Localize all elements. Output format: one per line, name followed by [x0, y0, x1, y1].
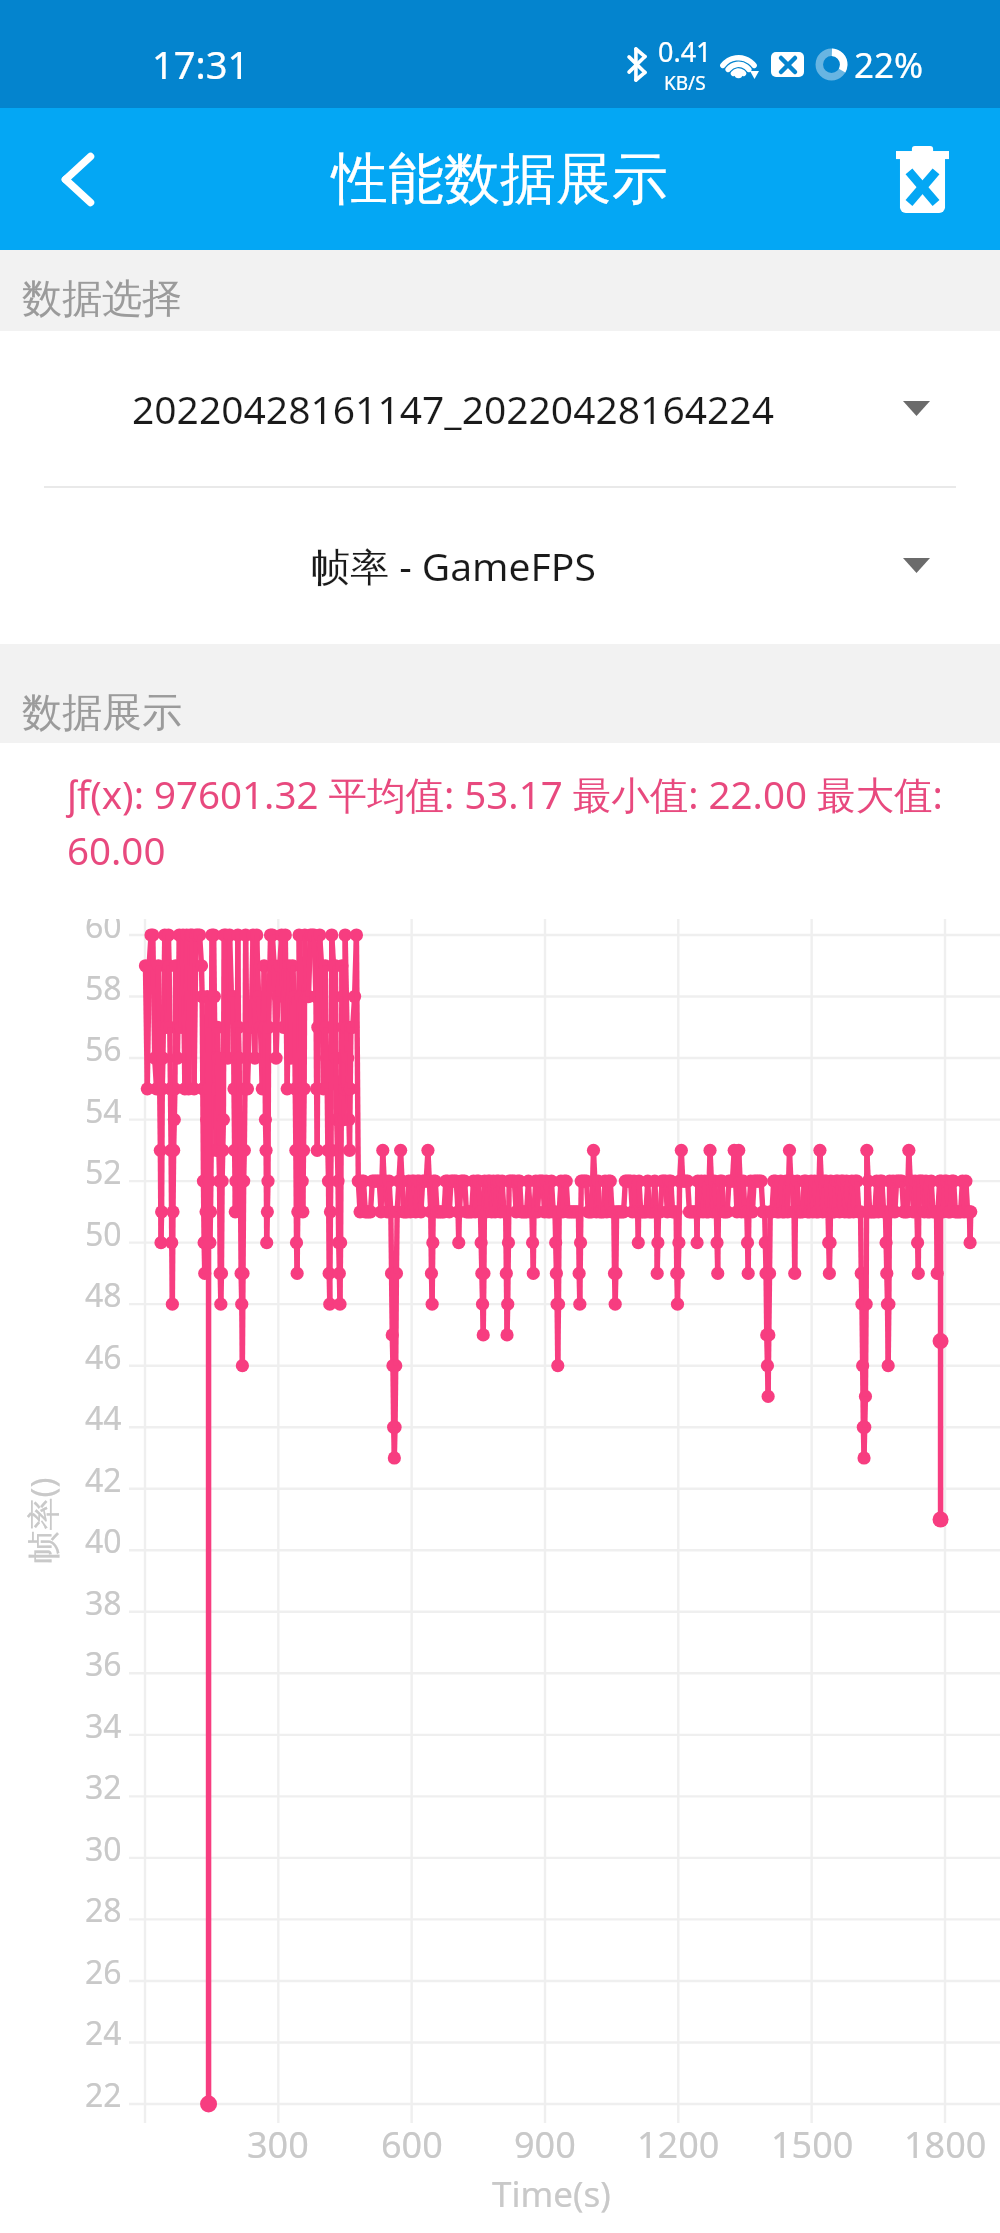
staticText: 56	[85, 1027, 122, 1071]
staticText: 24	[85, 2011, 122, 2055]
staticText: 17:31	[152, 38, 250, 90]
staticText: 40	[85, 1519, 122, 1563]
staticText: 48	[85, 1273, 122, 1317]
staticText: 50	[85, 1212, 122, 1256]
staticText: 26	[85, 1950, 122, 1994]
staticText: 22	[85, 2073, 122, 2117]
staticText: 22%	[854, 41, 924, 89]
staticText: Time(s)	[492, 2170, 611, 2218]
staticText: 32	[85, 1765, 122, 1809]
staticText: 58	[85, 966, 122, 1010]
button[interactable]: 20220428161147_20220428164224	[0, 331, 1000, 486]
staticText: 1200	[637, 2120, 720, 2169]
staticText: 44	[85, 1396, 122, 1440]
staticText: 30	[85, 1827, 122, 1871]
staticText: 28	[85, 1888, 122, 1932]
staticText: 900	[514, 2120, 576, 2169]
staticText: 20220428161147_20220428164224	[132, 382, 774, 435]
staticText: 46	[85, 1335, 122, 1379]
button[interactable]: Back	[0, 108, 156, 250]
staticText: 600	[381, 2120, 443, 2169]
staticText: 38	[85, 1581, 122, 1625]
staticText: 帧率()	[19, 1477, 64, 1563]
staticText: 60	[85, 919, 122, 948]
staticText: 数据选择	[22, 273, 182, 323]
staticText: 性能数据展示	[332, 144, 668, 215]
staticText: 54	[85, 1089, 122, 1133]
staticText: 52	[85, 1150, 122, 1194]
staticText: 1800	[904, 2120, 987, 2169]
staticText: 1500	[771, 2120, 854, 2169]
staticText: 34	[85, 1704, 122, 1748]
staticText: ʃf(x): 97601.32 平均值: 53.17 最小值: 22.00 最大…	[67, 768, 967, 877]
staticText: 数据展示	[22, 687, 182, 737]
staticText: 帧率 - GameFPS	[311, 539, 596, 592]
staticText: KB/S	[664, 70, 706, 96]
staticText: 0.41	[658, 33, 712, 70]
staticText: 36	[85, 1642, 122, 1686]
staticText: 42	[85, 1458, 122, 1502]
button[interactable]: 帧率 - GameFPS	[0, 486, 1000, 644]
button[interactable]: Delete	[844, 108, 1000, 250]
staticText: 300	[247, 2120, 309, 2169]
